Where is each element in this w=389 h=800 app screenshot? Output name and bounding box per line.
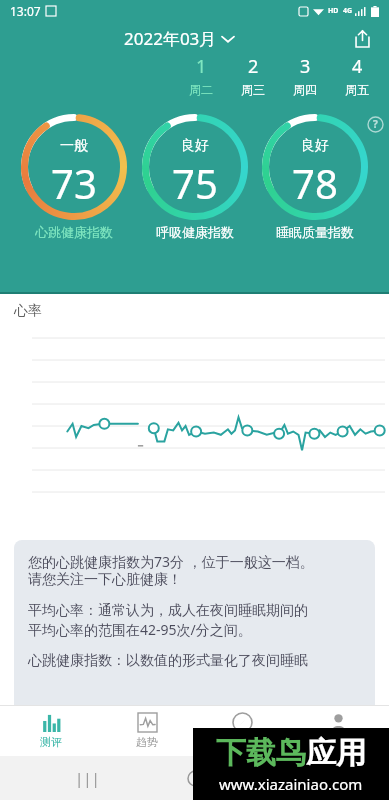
staticText: 您的心跳健康指数为73分 ，位于一般这一档。 bbox=[28, 552, 314, 571]
button[interactable]: Back bbox=[282, 758, 322, 798]
button[interactable]: Tab bbox=[197, 713, 287, 749]
staticText: 心率 bbox=[14, 302, 42, 320]
staticText: 测评 bbox=[40, 735, 62, 749]
staticText: 趋势 bbox=[136, 735, 158, 749]
staticText: HD bbox=[328, 6, 339, 16]
staticText: 3 bbox=[300, 54, 311, 79]
staticText: 良好 bbox=[181, 137, 209, 155]
button[interactable]: Share bbox=[347, 23, 377, 53]
staticText: 周二 bbox=[189, 82, 213, 97]
staticText: 睡眠质量指数 bbox=[276, 224, 354, 240]
staticText: 周五 bbox=[345, 82, 369, 97]
button[interactable]: Recents bbox=[67, 758, 107, 798]
staticText: 良好 bbox=[301, 137, 329, 155]
button[interactable]: 3 bbox=[279, 54, 331, 97]
staticText: 1 bbox=[196, 54, 207, 79]
staticText: 周三 bbox=[241, 82, 265, 97]
button[interactable]: 2022年03月 bbox=[118, 25, 240, 52]
button[interactable]: Help bbox=[365, 114, 385, 134]
button[interactable]: 良好 bbox=[140, 112, 250, 240]
staticText: 4G bbox=[343, 6, 353, 16]
staticText: 平均心率的范围在42-95次/分之间。 bbox=[28, 620, 252, 639]
button[interactable]: Home bbox=[175, 758, 215, 798]
staticText: 呼吸健康指数 bbox=[156, 224, 234, 240]
button[interactable]: 测评 bbox=[6, 713, 96, 749]
staticText: 4 bbox=[352, 54, 363, 79]
staticText: 2 bbox=[248, 54, 259, 79]
staticText: 平均心率：通常认为，成人在夜间睡眠期间的 bbox=[28, 602, 308, 620]
staticText: 73 bbox=[51, 156, 97, 210]
staticText: 78 bbox=[292, 156, 338, 210]
staticText: 应用 bbox=[306, 734, 366, 772]
staticText: 周四 bbox=[293, 82, 317, 97]
staticText: ? bbox=[373, 117, 378, 131]
button[interactable]: 良好 bbox=[260, 112, 370, 240]
staticText: 一般 bbox=[60, 137, 88, 155]
button[interactable]: 您的心跳健康指数为73分 ，位于一般这一档。 bbox=[14, 540, 375, 715]
staticText: 心跳健康指数 bbox=[35, 224, 113, 240]
staticText: 2022年03月 bbox=[124, 27, 217, 50]
staticText: 13:07 bbox=[10, 3, 41, 19]
button[interactable]: 趋势 bbox=[102, 713, 192, 749]
button[interactable]: 一般 bbox=[19, 112, 129, 240]
button[interactable]: 4 bbox=[331, 54, 383, 97]
staticText: 75 bbox=[172, 156, 218, 210]
staticText: www.xiazainiao.com bbox=[219, 774, 363, 794]
staticText: 请您关注一下心脏健康！ bbox=[28, 571, 182, 589]
staticText: 下载鸟 bbox=[216, 734, 306, 772]
staticText: 心跳健康指数：以数值的形式量化了夜间睡眠 bbox=[28, 652, 308, 670]
button[interactable]: 1 bbox=[175, 54, 227, 97]
button[interactable]: 2 bbox=[227, 54, 279, 97]
staticText: ||| bbox=[75, 768, 100, 788]
button[interactable]: Tab bbox=[293, 713, 383, 749]
